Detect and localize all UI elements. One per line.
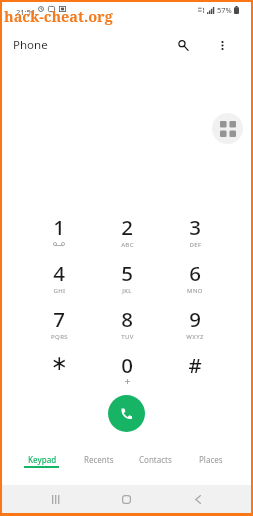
staticText: # — [188, 351, 202, 379]
button[interactable]: # — [161, 352, 229, 398]
staticText: 3 — [189, 213, 201, 241]
button[interactable]: Home — [91, 485, 162, 513]
staticText: WXYZ — [186, 333, 204, 341]
button[interactable]: Keypad — [14, 454, 71, 476]
button[interactable]: 3 — [161, 214, 229, 260]
button[interactable]: 7 — [25, 306, 93, 352]
button[interactable]: 1 — [25, 214, 93, 260]
button[interactable]: Places — [183, 454, 239, 476]
button[interactable]: 8 — [93, 306, 161, 352]
staticText: ∗ — [50, 351, 68, 375]
staticText: 2 — [121, 213, 133, 241]
staticText: 0 — [121, 351, 133, 379]
staticText: Recents — [84, 454, 114, 465]
button[interactable]: 9 — [161, 306, 229, 352]
staticText: Contacts — [139, 454, 172, 465]
button[interactable]: 6 — [161, 260, 229, 306]
button[interactable]: 4 — [25, 260, 93, 306]
staticText: 4 — [53, 259, 65, 287]
button[interactable]: Keypad options — [212, 113, 243, 144]
button[interactable]: 0 — [93, 352, 161, 398]
button[interactable]: Back — [162, 485, 233, 513]
staticText: PQRS — [51, 333, 68, 341]
staticText: GHI — [53, 287, 66, 295]
staticText: Places — [199, 454, 223, 465]
staticText: ABC — [121, 241, 134, 249]
staticText: MNO — [187, 287, 203, 295]
staticText: 8 — [121, 305, 133, 333]
staticText: 21:51 — [16, 7, 36, 17]
button[interactable]: Contacts — [127, 454, 183, 476]
button[interactable]: ∗ — [25, 352, 93, 398]
button[interactable]: Recents — [71, 454, 127, 476]
staticText: 5 — [121, 259, 133, 287]
staticText: DEF — [189, 241, 202, 249]
staticText: TUV — [121, 333, 134, 341]
button[interactable]: More options — [206, 29, 238, 61]
button[interactable]: 5 — [93, 260, 161, 306]
staticText: Phone — [13, 37, 48, 53]
button[interactable]: Call — [108, 395, 145, 432]
staticText: 6 — [189, 259, 201, 287]
staticText: JKL — [122, 287, 132, 295]
staticText: 57% — [217, 5, 232, 15]
button[interactable]: Recents — [20, 485, 91, 513]
staticText: 9 — [189, 305, 201, 333]
button[interactable]: 2 — [93, 214, 161, 260]
staticText: 1 — [53, 213, 65, 241]
button[interactable]: Search — [167, 29, 199, 61]
staticText: 7 — [53, 305, 65, 333]
staticText: hack-cheat.org — [4, 6, 113, 26]
staticText: Keypad — [28, 454, 57, 465]
